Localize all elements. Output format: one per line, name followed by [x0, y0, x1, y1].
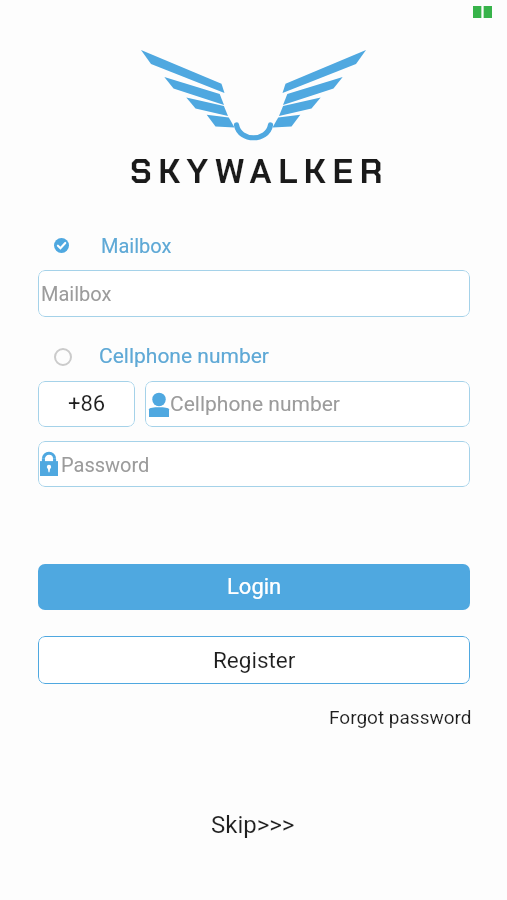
button[interactable]: Forgot password	[329, 706, 472, 728]
staticText: SKYWALKER	[130, 149, 390, 193]
staticText: Mailbox	[101, 234, 172, 257]
staticText: Mailbox	[41, 282, 112, 305]
button[interactable]: +86	[38, 381, 135, 427]
button[interactable]: Mailbox	[54, 234, 172, 257]
button[interactable]: Register	[38, 636, 470, 684]
button[interactable]: Login	[38, 564, 470, 610]
staticText: Skip>>>	[211, 811, 295, 839]
staticText: Cellphone number	[170, 392, 340, 417]
staticText: Password	[61, 453, 150, 476]
staticText: Register	[213, 647, 296, 673]
button[interactable]: Password	[38, 441, 470, 487]
button[interactable]: Skip>>>	[201, 806, 305, 844]
button[interactable]: Cellphone number	[145, 381, 470, 427]
staticText: Login	[227, 574, 282, 600]
button[interactable]: Mailbox	[38, 270, 470, 317]
staticText: Cellphone number	[99, 344, 269, 369]
staticText: +86	[68, 391, 106, 417]
button[interactable]: Fullscreen	[473, 6, 492, 18]
button[interactable]: Cellphone number	[54, 344, 269, 369]
staticText: Forgot password	[329, 706, 472, 728]
